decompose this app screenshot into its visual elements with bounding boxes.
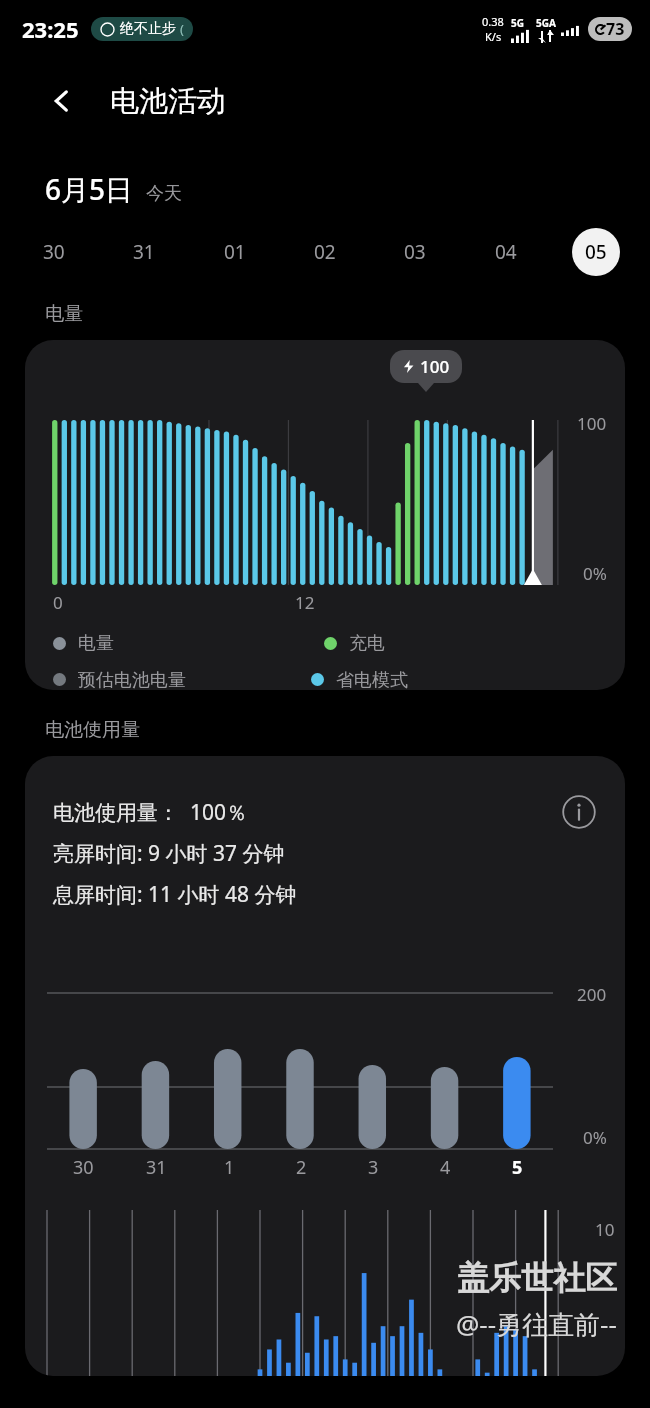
button[interactable]: 电量 — [53, 632, 114, 655]
staticText: 10 — [595, 1218, 615, 1241]
staticText: 电池使用量 — [45, 718, 140, 742]
staticText: 亮屏时间: 9 小时 37 分钟 — [53, 839, 285, 868]
staticText: 01 — [224, 239, 246, 265]
staticText: 充电 — [349, 632, 385, 655]
staticText: 6月5日 — [45, 170, 134, 208]
staticText: 电量 — [45, 302, 83, 326]
staticText: @--勇往直前-- — [456, 1306, 617, 1342]
staticText: 电量 — [78, 632, 114, 655]
staticText: 2 — [296, 1155, 307, 1180]
staticText: 12 — [295, 591, 315, 614]
staticText: 5G — [511, 16, 524, 30]
staticText: 23:25 — [22, 14, 79, 44]
staticText: 200 — [577, 983, 607, 1006]
staticText: 今天 — [146, 182, 182, 205]
staticText: 息屏时间: 11 小时 48 分钟 — [53, 880, 297, 909]
staticText: 省电模式 — [336, 669, 408, 690]
button[interactable]: 01 — [211, 228, 259, 276]
staticText: 预估电池电量 — [78, 669, 186, 690]
button[interactable]: 30 — [30, 228, 78, 276]
button[interactable]: 02 — [301, 228, 349, 276]
staticText: 05 — [585, 239, 607, 265]
button[interactable]: 预估电池电量 — [53, 669, 186, 690]
staticText: K/s — [485, 29, 502, 44]
staticText: 0 — [53, 591, 63, 614]
staticText: 3 — [368, 1155, 379, 1180]
button[interactable]: 03 — [391, 228, 439, 276]
staticText: 绝不止步 — [120, 20, 176, 38]
button[interactable]: Info — [559, 792, 599, 832]
staticText: 1 — [224, 1155, 235, 1180]
staticText: 31 — [133, 239, 155, 265]
staticText: 31 — [146, 1155, 167, 1180]
button[interactable]: 05 — [572, 228, 620, 276]
staticText: 02 — [314, 239, 336, 265]
staticText: 73 — [606, 18, 625, 40]
staticText: 0.38 — [482, 14, 504, 29]
staticText: 100 — [420, 355, 450, 378]
staticText: 30 — [73, 1155, 94, 1180]
staticText: 5GA — [536, 16, 556, 30]
staticText: 电池使用量： 100％ — [53, 798, 247, 827]
button[interactable]: Back — [40, 79, 84, 123]
staticText: 0% — [583, 1126, 607, 1149]
button[interactable]: 31 — [120, 228, 168, 276]
staticText: 5 — [512, 1155, 523, 1180]
staticText: ( — [180, 20, 184, 38]
button[interactable]: 电池使用量： 100％ — [25, 756, 625, 1376]
button[interactable]: 04 — [482, 228, 530, 276]
staticText: 03 — [404, 239, 426, 265]
button[interactable]: 充电 — [324, 632, 385, 655]
button[interactable]: 省电模式 — [311, 669, 408, 690]
staticText: 电池活动 — [110, 83, 226, 120]
staticText: 4 — [440, 1155, 451, 1180]
button[interactable]: 100 — [25, 340, 625, 690]
staticText: 盖乐世社区 — [457, 1258, 617, 1298]
staticText: 04 — [495, 239, 517, 265]
staticText: 0% — [583, 562, 607, 585]
staticText: 100 — [577, 412, 607, 435]
staticText: 30 — [43, 239, 65, 265]
